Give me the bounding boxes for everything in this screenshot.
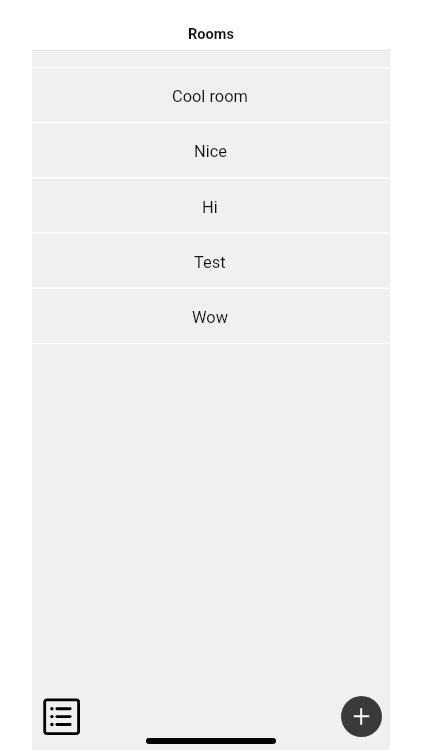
staticText: Test	[194, 253, 226, 272]
button[interactable]: Hi	[32, 179, 390, 233]
button[interactable]: Wow	[32, 289, 390, 343]
staticText: Rooms	[188, 25, 234, 42]
staticText: Cool room	[172, 87, 248, 106]
button[interactable]: Cool room	[32, 68, 390, 122]
button[interactable]: Nice	[32, 123, 390, 177]
button[interactable]: Rooms list	[34, 689, 89, 744]
button[interactable]: Test	[32, 234, 390, 288]
button[interactable]: Add room	[341, 696, 382, 737]
staticText: Hi	[202, 198, 218, 217]
staticText: Wow	[192, 308, 228, 327]
staticText: Nice	[194, 142, 227, 161]
